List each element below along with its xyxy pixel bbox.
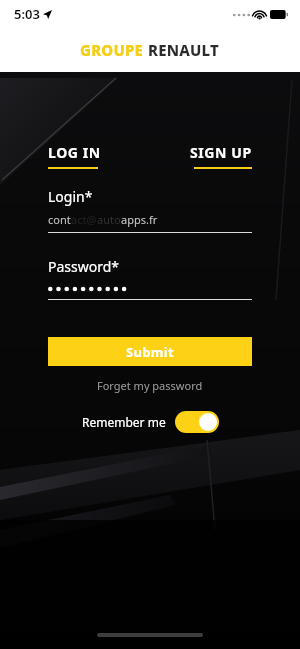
staticText: GROUPE: [80, 40, 144, 60]
button[interactable]: Remember me: [82, 411, 219, 433]
staticText: apps.fr: [121, 212, 158, 227]
staticText: Password*: [48, 257, 120, 276]
staticText: auto: [97, 212, 121, 227]
staticText: LOG IN: [48, 143, 101, 162]
button[interactable]: Submit: [48, 337, 252, 366]
button[interactable]: LOG IN: [48, 143, 105, 169]
button[interactable]: SIGN UP: [190, 143, 252, 169]
staticText: SIGN UP: [190, 143, 252, 162]
staticText: Forget my password: [97, 378, 203, 393]
staticText: Login*: [48, 187, 93, 206]
staticText: Remember me: [82, 414, 166, 430]
staticText: RENAULT: [148, 40, 220, 60]
button[interactable]: Forget my password: [91, 376, 209, 395]
staticText: cont: [48, 212, 71, 227]
other: Remember me toggle, on: [175, 411, 219, 433]
staticText: Submit: [126, 343, 174, 361]
staticText: act@: [71, 212, 97, 227]
button[interactable]: Login*: [48, 187, 252, 233]
staticText: 5:03: [14, 5, 40, 23]
button[interactable]: Password*: [48, 257, 252, 300]
